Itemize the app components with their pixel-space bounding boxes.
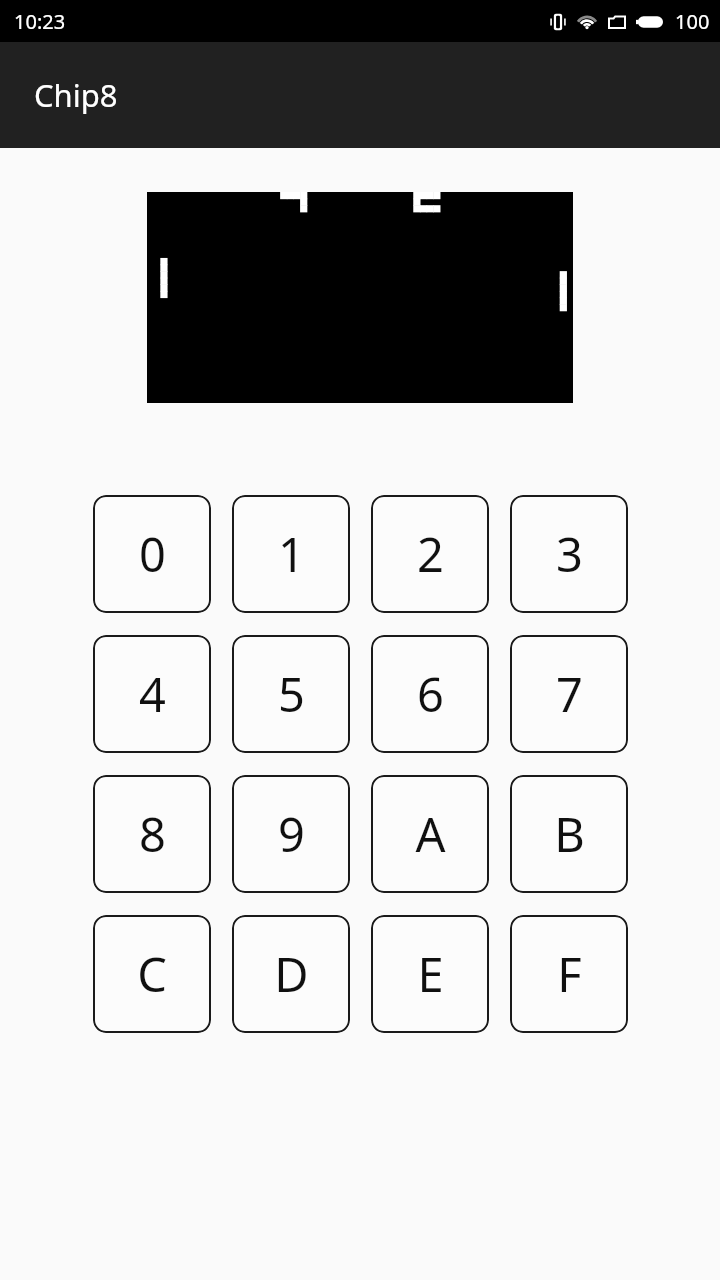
staticText: 8 — [139, 802, 166, 866]
staticText: 6 — [417, 662, 444, 726]
staticText: 3 — [556, 522, 583, 586]
button[interactable]: 1 — [232, 495, 350, 613]
staticText: 4 — [139, 662, 166, 726]
staticText: C — [137, 942, 167, 1006]
button[interactable]: B — [510, 775, 628, 893]
staticText: Chip8 — [34, 74, 118, 116]
button[interactable]: 2 — [371, 495, 489, 613]
staticText: A — [415, 802, 446, 866]
button[interactable]: 5 — [232, 635, 350, 753]
button[interactable]: 9 — [232, 775, 350, 893]
button[interactable]: 7 — [510, 635, 628, 753]
staticText: 1 — [278, 522, 305, 586]
staticText: 2 — [417, 522, 444, 586]
staticText: B — [554, 802, 585, 866]
button[interactable]: D — [232, 915, 350, 1033]
button[interactable]: E — [371, 915, 489, 1033]
staticText: 5 — [278, 662, 305, 726]
button[interactable]: C — [93, 915, 211, 1033]
button[interactable]: 4 — [93, 635, 211, 753]
button[interactable]: 0 — [93, 495, 211, 613]
staticText: D — [274, 942, 309, 1006]
staticText: E — [417, 942, 444, 1006]
button[interactable]: A — [371, 775, 489, 893]
staticText: 10:23 — [14, 8, 66, 35]
staticText: 9 — [278, 802, 305, 866]
button[interactable]: 3 — [510, 495, 628, 613]
button[interactable]: 6 — [371, 635, 489, 753]
staticText: F — [557, 942, 582, 1006]
staticText: 0 — [139, 522, 166, 586]
button[interactable]: F — [510, 915, 628, 1033]
staticText: 100 — [675, 8, 710, 35]
staticText: 7 — [556, 662, 583, 726]
button[interactable]: 8 — [93, 775, 211, 893]
